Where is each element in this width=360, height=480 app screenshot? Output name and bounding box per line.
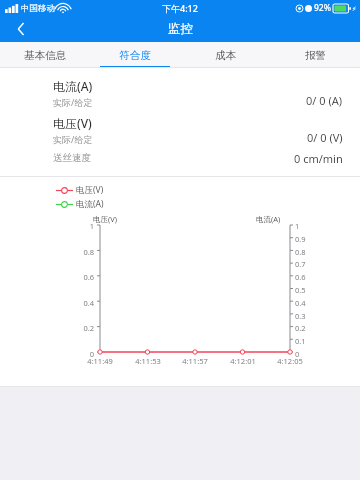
staticText: 0.7 <box>295 259 306 269</box>
staticText: 0.8 <box>295 247 306 257</box>
staticText: 4:11:53 <box>125 356 171 366</box>
staticText: 电流(A) <box>256 214 281 224</box>
staticText: 0.9 <box>295 234 306 244</box>
button[interactable]: 送丝速度 <box>0 148 360 168</box>
staticText: 0.4 <box>72 298 94 308</box>
staticText: 0.5 <box>295 285 306 295</box>
staticText: 0.1 <box>295 336 306 346</box>
staticText: 符合度 <box>119 49 151 62</box>
staticText: 报警 <box>305 49 326 62</box>
staticText: 中国移动 <box>21 3 55 14</box>
staticText: 0 <box>295 349 300 359</box>
button[interactable]: 符合度 <box>90 42 180 68</box>
staticText: 监控 <box>168 21 193 37</box>
staticText: 电流(A) <box>76 198 104 210</box>
staticText: 基本信息 <box>24 49 66 62</box>
staticText: ⚡ <box>352 5 357 12</box>
staticText: 1 <box>72 221 94 231</box>
staticText: 电流(A) <box>53 78 93 94</box>
staticText: 0/ 0 (A) <box>306 93 343 108</box>
staticText: 实际/给定 <box>53 133 93 145</box>
staticText: 0 <box>72 349 94 359</box>
button[interactable]: 电压(V) <box>0 111 360 148</box>
staticText: 4:11:57 <box>172 356 218 366</box>
staticText: 下午4:12 <box>162 2 198 14</box>
button[interactable]: 成本 <box>180 42 270 68</box>
staticText: 电压(V) <box>93 214 117 224</box>
staticText: 0.6 <box>72 272 94 282</box>
staticText: 电压(V) <box>53 115 92 131</box>
staticText: 0/ 0 (V) <box>307 130 343 145</box>
staticText: 实际/给定 <box>53 96 93 108</box>
button[interactable]: 报警 <box>270 42 360 68</box>
staticText: 0.6 <box>295 272 306 282</box>
button[interactable]: 基本信息 <box>0 42 90 68</box>
staticText: 0.2 <box>295 323 306 333</box>
staticText: 0 cm/min <box>294 151 343 166</box>
button[interactable]: Back <box>0 16 42 42</box>
staticText: 4:11:49 <box>77 356 123 366</box>
staticText: 92% <box>314 2 331 14</box>
staticText: 4:12:05 <box>267 356 313 366</box>
staticText: 4:12:01 <box>220 356 266 366</box>
staticText: 0.3 <box>295 311 306 321</box>
staticText: 1 <box>295 221 300 231</box>
staticText: 电压(V) <box>76 184 104 196</box>
staticText: 送丝速度 <box>53 152 91 164</box>
staticText: 0.8 <box>72 247 94 257</box>
staticText: 0.4 <box>295 298 306 308</box>
staticText: 0.2 <box>72 323 94 333</box>
staticText: 成本 <box>215 49 236 62</box>
button[interactable]: 电流(A) <box>0 74 360 111</box>
